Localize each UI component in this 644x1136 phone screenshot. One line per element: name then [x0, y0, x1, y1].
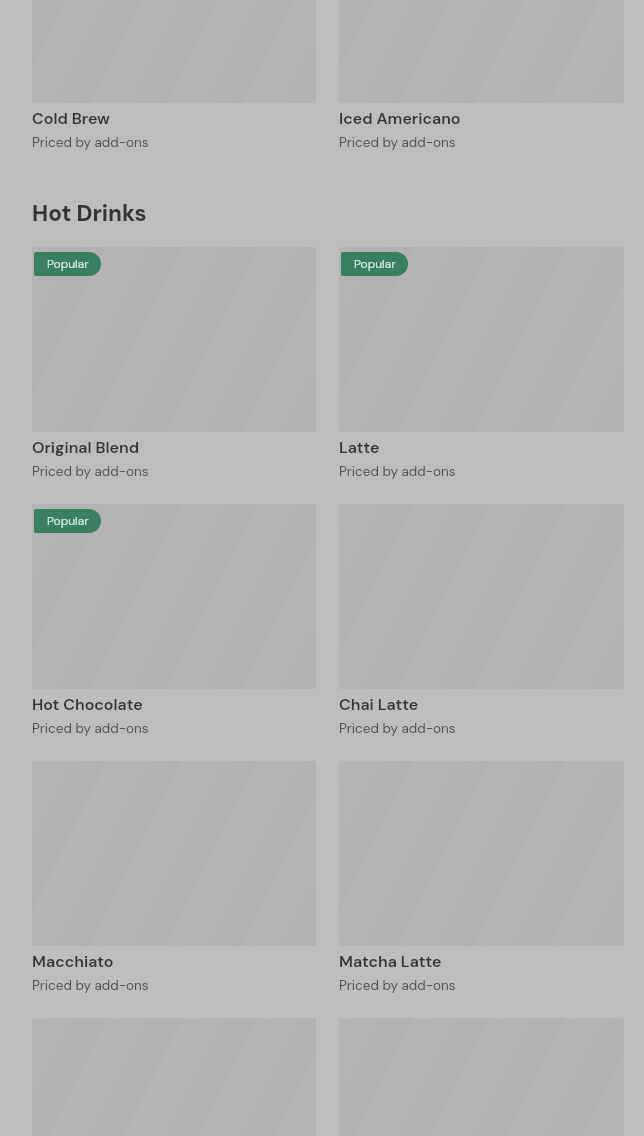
staticText: Priced by add-ons: [32, 463, 149, 481]
staticText: Priced by add-ons: [32, 977, 149, 995]
staticText: Priced by add-ons: [339, 720, 456, 738]
button[interactable]: Matcha Latte: [339, 761, 624, 995]
staticText: Hot Chocolate: [32, 694, 143, 715]
staticText: Cold Brew: [32, 108, 110, 129]
staticText: Macchiato: [32, 951, 114, 972]
staticText: Latte: [339, 437, 380, 458]
staticText: Priced by add-ons: [32, 720, 149, 738]
staticText: Hot Drinks: [32, 199, 147, 228]
button[interactable]: Iced Americano: [339, 0, 624, 152]
staticText: Popular: [47, 513, 89, 529]
staticText: Matcha Latte: [339, 951, 442, 972]
staticText: Popular: [47, 256, 89, 272]
staticText: Priced by add-ons: [339, 134, 456, 152]
button[interactable]: Chai Latte: [339, 504, 624, 738]
button[interactable]: Popular: [32, 247, 316, 481]
staticText: Original Blend: [32, 437, 140, 458]
staticText: Priced by add-ons: [339, 977, 456, 995]
staticText: Priced by add-ons: [32, 134, 149, 152]
button[interactable]: Popular: [32, 504, 316, 738]
staticText: Popular: [354, 256, 396, 272]
button[interactable]: Popular: [339, 247, 624, 481]
staticText: Iced Americano: [339, 108, 461, 129]
button[interactable]: Cold Brew: [32, 0, 316, 152]
staticText: Priced by add-ons: [339, 463, 456, 481]
staticText: Chai Latte: [339, 694, 419, 715]
button[interactable]: Macchiato: [32, 761, 316, 995]
